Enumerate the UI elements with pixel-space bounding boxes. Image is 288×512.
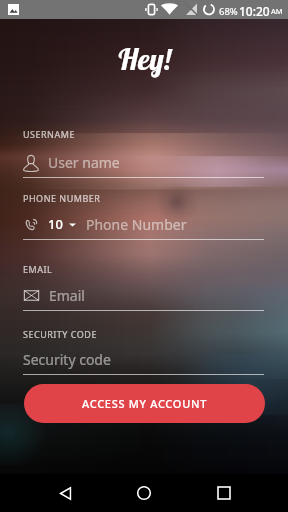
button[interactable]: Email — [23, 280, 264, 310]
staticText: SECURITY CODE — [23, 328, 97, 340]
staticText: USERNAME — [23, 128, 75, 140]
staticText: Security code — [23, 350, 111, 369]
button[interactable]: Back — [45, 474, 85, 512]
staticText: PHONE NUMBER — [23, 192, 101, 204]
button[interactable]: User name — [23, 147, 264, 177]
staticText: Email — [49, 286, 85, 305]
staticText: Phone Number — [86, 215, 187, 234]
button[interactable]: Recents — [204, 474, 244, 512]
staticText: ACCESS MY ACCOUNT — [82, 396, 208, 411]
staticText: EMAIL — [23, 263, 53, 275]
button[interactable]: Home — [124, 474, 164, 512]
button[interactable]: 10 — [23, 209, 264, 239]
button[interactable]: ACCESS MY ACCOUNT — [24, 384, 265, 423]
staticText: 10:20 — [239, 3, 270, 19]
button[interactable]: Security code — [23, 345, 264, 374]
staticText: User name — [48, 153, 120, 172]
staticText: AM — [271, 6, 283, 16]
staticText: 68% — [219, 5, 238, 18]
staticText: 10 — [48, 215, 63, 233]
staticText: Hey! — [117, 40, 172, 78]
